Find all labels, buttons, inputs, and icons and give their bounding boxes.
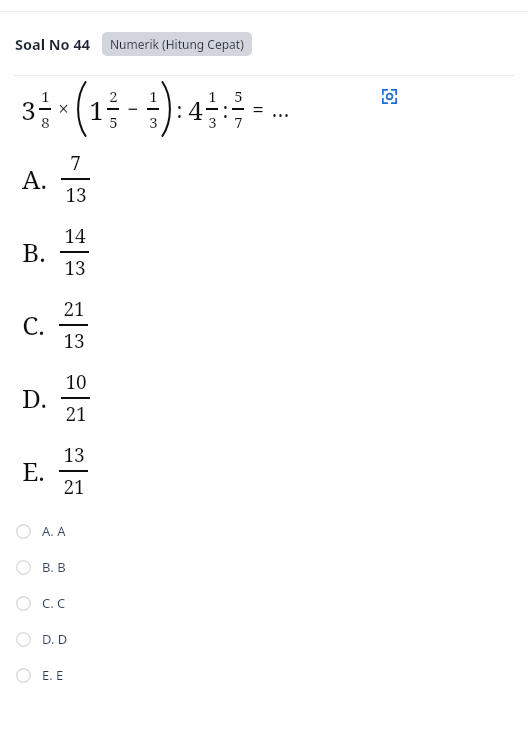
button[interactable]: B. B [0,549,528,585]
staticText: B. [22,234,46,269]
staticText: 13 [64,255,86,281]
staticText: 21 [65,401,87,427]
staticText: 7 [234,112,243,132]
staticText: 21 [63,474,85,500]
staticText: 5 [109,112,118,132]
staticText: C. C [42,594,66,612]
staticText: 1 [41,86,50,106]
staticText: E. [22,453,45,488]
staticText: … [271,95,290,124]
staticText: E. E [42,666,64,684]
button[interactable]: A. [0,142,528,215]
staticText: 10 [65,369,87,395]
staticText: 3 [21,92,36,127]
staticText: 7 [70,150,81,176]
staticText: 13 [63,328,85,354]
staticText: 3 [149,112,158,132]
staticText: A. A [42,522,66,540]
staticText: − [127,96,139,122]
staticText: 1 [149,86,158,106]
staticText: 1 [208,86,217,106]
button[interactable]: A. A [0,513,528,549]
staticText: = [252,95,264,124]
button[interactable]: Scan math expression [374,81,404,111]
staticText: × [58,96,69,122]
staticText: : [222,94,229,124]
staticText: : [176,94,183,124]
button[interactable]: E. E [0,657,528,693]
staticText: 2 [109,86,118,106]
staticText: 21 [63,296,85,322]
button[interactable]: B. [0,215,528,288]
staticText: D. D [42,630,68,648]
button[interactable]: C. C [0,585,528,621]
staticText: 14 [64,223,86,249]
staticText: 13 [65,182,87,208]
staticText: 3 [208,112,217,132]
staticText: 5 [234,86,243,106]
staticText: 1 [89,92,104,127]
staticText: A. [22,161,47,196]
staticText: B. B [42,558,66,576]
staticText: Soal No 44 [15,34,91,54]
button[interactable]: D. [0,361,528,434]
button[interactable]: C. [0,288,528,361]
button[interactable]: E. [0,434,528,507]
button[interactable]: Numerik (Hitung Cepat) [102,32,252,56]
staticText: 4 [188,92,203,127]
staticText: 13 [63,442,85,468]
staticText: D. [22,380,47,415]
staticText: 8 [41,112,50,132]
staticText: C. [22,307,45,342]
staticText: Numerik (Hitung Cepat) [110,36,244,52]
button[interactable]: D. D [0,621,528,657]
